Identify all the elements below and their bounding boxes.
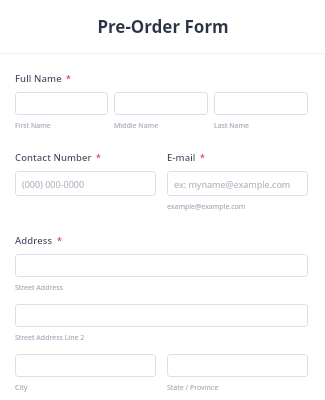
staticText: City bbox=[15, 383, 28, 393]
staticText: Street Address Line 2 bbox=[15, 333, 85, 343]
staticText: Pre-Order Form bbox=[97, 15, 229, 38]
staticText: * bbox=[200, 151, 205, 163]
staticText: * bbox=[96, 151, 101, 163]
button[interactable] bbox=[15, 354, 156, 377]
staticText: E-mail bbox=[167, 151, 196, 164]
button[interactable]: ex: myname@example.com bbox=[167, 171, 308, 196]
button[interactable] bbox=[15, 92, 108, 115]
staticText: Middle Name bbox=[114, 121, 159, 131]
staticText: Last Name bbox=[214, 121, 250, 131]
staticText: * bbox=[57, 234, 62, 246]
staticText: ex: myname@example.com bbox=[174, 178, 291, 190]
button[interactable]: (000) 000-0000 bbox=[15, 171, 156, 196]
button[interactable] bbox=[214, 92, 308, 115]
button[interactable] bbox=[15, 254, 308, 277]
button[interactable] bbox=[167, 354, 308, 377]
button[interactable] bbox=[114, 92, 208, 115]
staticText: First Name bbox=[15, 121, 51, 131]
staticText: Contact Number bbox=[15, 151, 92, 164]
staticText: * bbox=[66, 72, 71, 84]
button[interactable] bbox=[15, 304, 308, 327]
staticText: example@example.com bbox=[167, 202, 246, 212]
staticText: Address bbox=[15, 234, 53, 247]
staticText: (000) 000-0000 bbox=[22, 178, 85, 190]
staticText: State / Province bbox=[167, 383, 219, 393]
staticText: Full Name bbox=[15, 72, 62, 85]
staticText: Street Address bbox=[15, 283, 63, 293]
